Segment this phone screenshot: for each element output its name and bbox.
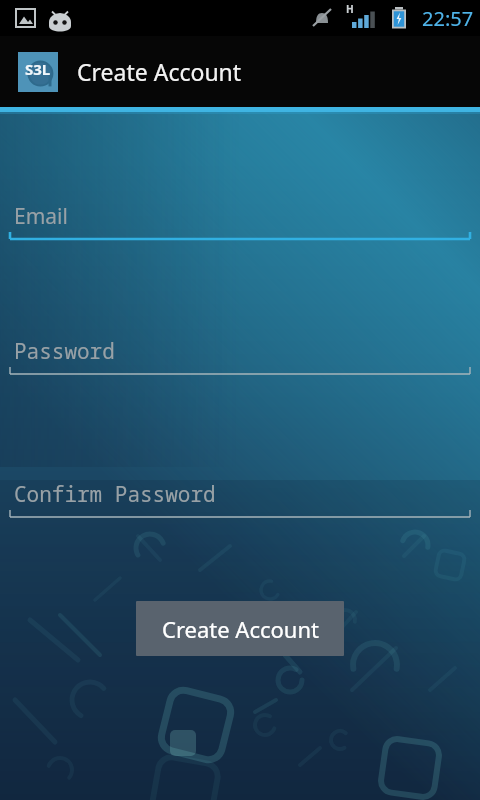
staticText: Create Account: [162, 614, 319, 644]
button[interactable]: App logo, navigate up: [18, 52, 58, 92]
staticText: H: [346, 2, 354, 16]
staticText: 22:57: [422, 5, 474, 32]
button[interactable]: Create Account: [136, 601, 344, 656]
button[interactable]: Email: [0, 192, 480, 247]
staticText: Password: [14, 337, 115, 366]
button[interactable]: Password: [0, 327, 480, 382]
button[interactable]: Confirm Password: [0, 470, 480, 525]
staticText: S3L: [25, 59, 51, 79]
staticText: Email: [14, 202, 68, 231]
staticText: Create Account: [77, 56, 242, 87]
staticText: Confirm Password: [14, 480, 216, 509]
